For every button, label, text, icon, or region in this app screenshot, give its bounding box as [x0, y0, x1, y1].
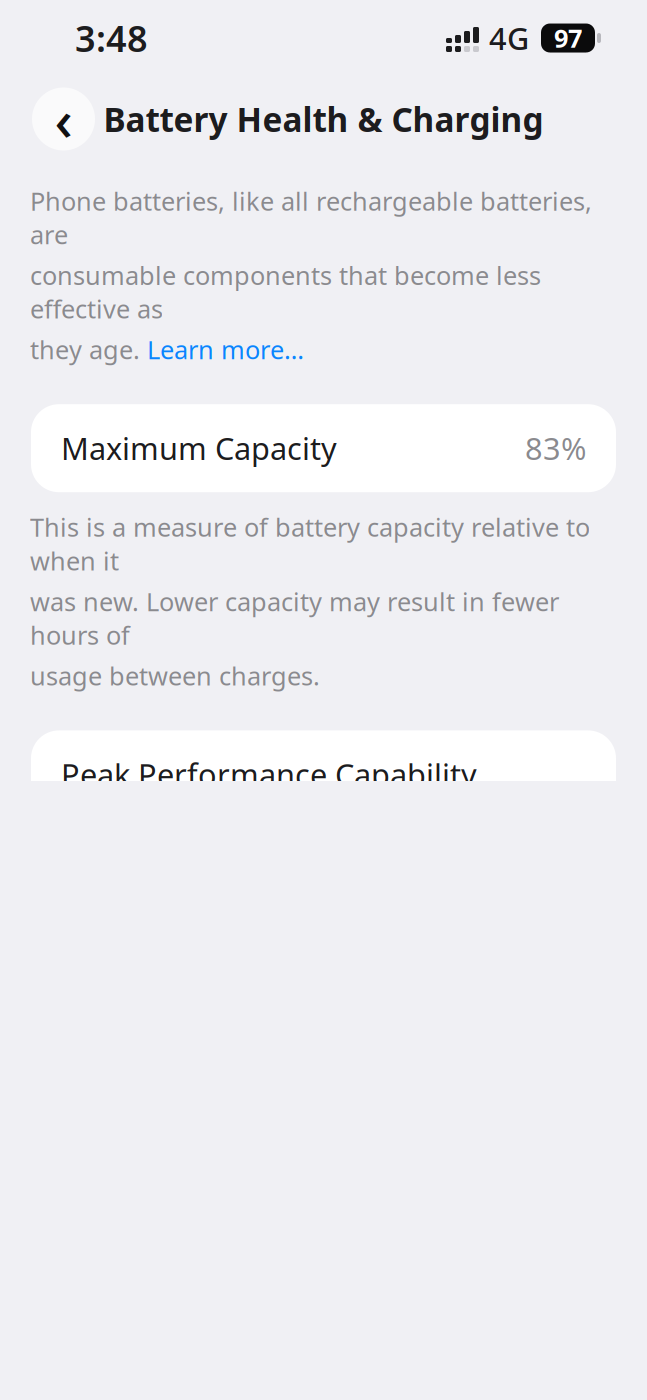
- staticText: they age.: [30, 333, 147, 366]
- staticText: 97: [554, 21, 582, 55]
- staticText: Learn more…: [147, 333, 304, 366]
- staticText: 3:48: [75, 14, 148, 62]
- button[interactable]: Back: [32, 87, 95, 150]
- staticText: usage between charges.: [30, 659, 320, 692]
- staticText: was new. Lower capacity may result in fe…: [30, 584, 559, 652]
- staticText: 4G: [489, 18, 529, 58]
- staticText: Phone batteries, like all rechargeable b…: [30, 184, 592, 251]
- button[interactable]: Maximum Capacity: [31, 404, 616, 492]
- staticText: 83%: [525, 428, 586, 468]
- staticText: Maximum Capacity: [61, 428, 337, 468]
- staticText: ‹: [54, 82, 72, 156]
- staticText: This is a measure of battery capacity re…: [30, 510, 590, 577]
- button[interactable]: Learn more…: [147, 333, 304, 366]
- staticText: Peak Performance Capability: [61, 754, 477, 795]
- staticText: Battery Health & Charging: [103, 97, 543, 141]
- staticText: consumable components that become less e…: [30, 258, 541, 326]
- button[interactable]: Peak Performance Capability: [31, 730, 616, 818]
